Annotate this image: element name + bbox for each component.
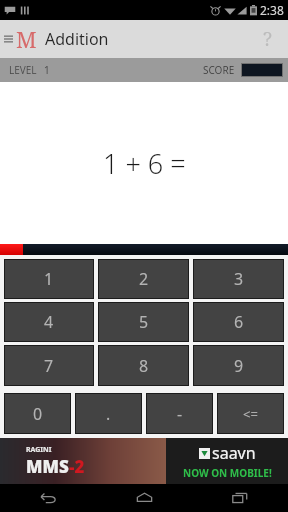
staticText: ? bbox=[263, 26, 273, 52]
button[interactable]: Recent apps bbox=[192, 484, 288, 512]
button[interactable]: 7 bbox=[5, 346, 93, 385]
button[interactable]: Help bbox=[248, 20, 288, 58]
button[interactable]: . bbox=[76, 394, 141, 433]
button[interactable]: 5 bbox=[99, 303, 188, 341]
staticText: 1 bbox=[44, 268, 54, 290]
button[interactable]: 0 bbox=[5, 394, 70, 433]
staticText: M bbox=[16, 24, 37, 54]
staticText: MMS bbox=[26, 455, 69, 478]
button[interactable]: 1 bbox=[5, 260, 93, 298]
button[interactable]: Back bbox=[0, 484, 96, 512]
staticText: 5 bbox=[139, 311, 149, 333]
staticText: NOW ON MOBILE! bbox=[183, 466, 272, 480]
staticText: Addition bbox=[45, 28, 109, 50]
staticText: 6 bbox=[234, 311, 244, 333]
button[interactable]: - bbox=[147, 394, 212, 433]
button[interactable]: 3 bbox=[194, 260, 283, 298]
button[interactable]: Menu bbox=[1, 23, 16, 55]
staticText: 7 bbox=[44, 355, 54, 377]
button[interactable]: 2 bbox=[99, 260, 188, 298]
staticText: LEVEL bbox=[9, 63, 37, 77]
staticText: 9 bbox=[234, 355, 244, 377]
staticText: 2 bbox=[139, 268, 149, 290]
button[interactable]: 4 bbox=[5, 303, 93, 341]
staticText: 1 + 6 = bbox=[103, 145, 186, 182]
staticText: <= bbox=[243, 405, 258, 423]
staticText: -2 bbox=[69, 455, 85, 478]
staticText: . bbox=[106, 403, 111, 425]
staticText: - bbox=[177, 403, 183, 425]
button[interactable]: 9 bbox=[194, 346, 283, 385]
staticText: SCORE bbox=[203, 63, 235, 77]
button[interactable]: Home bbox=[96, 484, 192, 512]
button[interactable]: 6 bbox=[194, 303, 283, 341]
button[interactable]: Advertisement bbox=[0, 438, 288, 484]
button[interactable]: <= bbox=[218, 394, 283, 433]
staticText: 0 bbox=[33, 403, 43, 425]
staticText: 4 bbox=[44, 311, 54, 333]
staticText: 2:38 bbox=[260, 2, 284, 18]
staticText: 1 bbox=[44, 63, 50, 77]
staticText: saavn bbox=[212, 442, 256, 464]
staticText: RAGINI bbox=[26, 445, 52, 455]
button[interactable]: 8 bbox=[99, 346, 188, 385]
staticText: 8 bbox=[139, 355, 149, 377]
staticText: 3 bbox=[234, 268, 244, 290]
